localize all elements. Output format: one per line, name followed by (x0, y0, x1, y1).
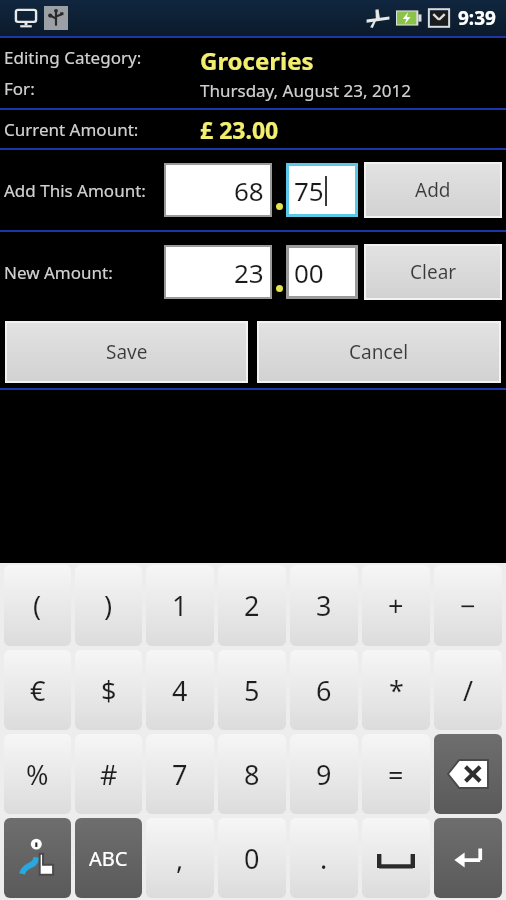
button[interactable]: $ (75, 650, 142, 730)
staticText: + (388, 587, 404, 624)
button[interactable]: % (4, 734, 71, 814)
staticText: Editing Category: (4, 46, 142, 69)
staticText: 7 (172, 756, 188, 793)
button[interactable]: * (362, 650, 430, 730)
button[interactable]: Clear (366, 246, 500, 298)
button[interactable]: Backspace (434, 734, 502, 814)
staticText: . (320, 840, 328, 877)
staticText: − (460, 587, 476, 624)
button[interactable]: Cancel (259, 323, 499, 381)
staticText: Groceries (200, 44, 314, 77)
staticText: Add (415, 177, 451, 203)
button[interactable]: 5 (218, 650, 286, 730)
staticText: Current Amount: (4, 118, 200, 141)
button[interactable]: Add (366, 164, 500, 216)
button[interactable]: ABC (75, 818, 142, 898)
button[interactable]: = (362, 734, 430, 814)
staticText: * (389, 672, 404, 709)
button[interactable]: 1 (146, 565, 214, 646)
staticText: 23 (234, 255, 264, 290)
staticText: Add This Amount: (4, 179, 164, 202)
button[interactable]: 23 (164, 245, 272, 299)
staticText: 4 (172, 672, 188, 709)
staticText: 9:39 (458, 5, 496, 31)
staticText: 8 (244, 756, 260, 793)
staticText: 1 (172, 587, 188, 624)
staticText: / (463, 672, 474, 709)
button[interactable]: / (434, 650, 502, 730)
staticText: ( (33, 587, 42, 624)
staticText: 75 (294, 173, 324, 208)
button[interactable]: 7 (146, 734, 214, 814)
staticText: $ (101, 672, 117, 709)
staticText: 00 (294, 255, 324, 290)
staticText: 3 (316, 587, 332, 624)
button[interactable]: € (4, 650, 71, 730)
button[interactable]: ( (4, 565, 71, 646)
staticText: € (30, 672, 46, 709)
staticText: For: (4, 77, 35, 100)
button[interactable]: . (290, 818, 358, 898)
button[interactable]: , (146, 818, 214, 898)
staticText: 2 (244, 587, 260, 624)
button[interactable]: 4 (146, 650, 214, 730)
staticText: 5 (244, 672, 260, 709)
button[interactable]: 0 (218, 818, 286, 898)
button[interactable]: 00 (286, 245, 358, 299)
button[interactable]: Space (362, 818, 430, 898)
button[interactable]: # (75, 734, 142, 814)
staticText: = (388, 756, 404, 793)
button[interactable]: Save (7, 323, 246, 381)
staticText: 6 (316, 672, 332, 709)
button[interactable]: 3 (290, 565, 358, 646)
button[interactable]: − (434, 565, 502, 646)
staticText: % (26, 756, 49, 793)
staticText: # (100, 756, 118, 793)
button[interactable]: Gesture input (4, 818, 71, 898)
staticText: 0 (244, 840, 260, 877)
button[interactable]: 68 (164, 163, 272, 217)
staticText: ) (104, 587, 113, 624)
button[interactable]: 8 (218, 734, 286, 814)
staticText: Clear (410, 259, 457, 285)
button[interactable]: ) (75, 565, 142, 646)
staticText: New Amount: (4, 261, 164, 284)
button[interactable]: 75 (286, 163, 358, 217)
button[interactable]: + (362, 565, 430, 646)
staticText: , (176, 840, 184, 877)
staticText: £ 23.00 (200, 114, 279, 145)
button[interactable]: 9 (290, 734, 358, 814)
button[interactable]: 2 (218, 565, 286, 646)
staticText: Cancel (349, 339, 409, 365)
staticText: 9 (316, 756, 332, 793)
staticText: 68 (234, 173, 264, 208)
staticText: Save (106, 339, 148, 365)
staticText: Thursday, August 23, 2012 (200, 79, 411, 102)
staticText: ABC (89, 845, 128, 872)
button[interactable]: Enter (434, 818, 502, 898)
button[interactable]: 6 (290, 650, 358, 730)
